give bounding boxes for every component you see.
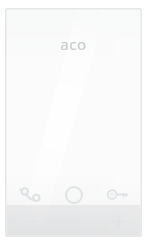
button[interactable]: Monitor [56, 177, 92, 213]
staticText: aco [60, 34, 87, 54]
button[interactable]: Open door [100, 177, 134, 211]
button[interactable]: Answer call [13, 177, 47, 211]
